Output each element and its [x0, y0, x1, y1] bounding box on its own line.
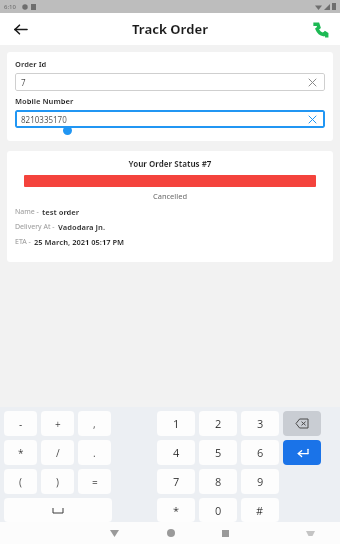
staticText: *	[173, 503, 180, 518]
staticText: Order Id	[15, 59, 47, 69]
staticText: Mobile Number	[15, 96, 74, 106]
staticText: 25 March, 2021 05:17 PM	[34, 237, 125, 247]
button[interactable]: 0	[199, 498, 237, 522]
staticText: ETA -	[15, 237, 31, 247]
button[interactable]: /	[41, 440, 74, 465]
staticText: /	[56, 446, 60, 460]
staticText: (	[19, 475, 22, 489]
staticText: 8210335170	[21, 114, 67, 125]
staticText: Name -	[15, 207, 39, 217]
button[interactable]: Call	[308, 17, 332, 41]
staticText: Delivery At -	[15, 222, 55, 232]
staticText: =	[92, 475, 98, 489]
staticText: 2	[215, 416, 222, 431]
button[interactable]: 6	[241, 440, 279, 465]
staticText: 6:10	[4, 3, 16, 11]
button[interactable]: *	[157, 498, 195, 522]
staticText: 0	[215, 503, 222, 518]
staticText: *	[18, 446, 24, 460]
staticText: #	[256, 503, 264, 518]
button[interactable]: 8	[199, 469, 237, 494]
staticText: Track Order	[132, 20, 208, 38]
staticText: 5	[215, 445, 222, 460]
button[interactable]: 3	[241, 411, 279, 436]
button[interactable]: Home	[161, 523, 181, 543]
button[interactable]	[4, 498, 112, 522]
button[interactable]: (	[4, 469, 37, 494]
button[interactable]: Enter	[283, 440, 321, 465]
staticText: 6	[257, 445, 264, 460]
staticText: -	[19, 417, 23, 431]
button[interactable]: Switch keyboard	[300, 523, 320, 543]
button[interactable]: -	[4, 411, 37, 436]
button[interactable]: Back	[104, 523, 124, 543]
button[interactable]: ,	[78, 411, 111, 436]
staticText: +	[55, 417, 61, 431]
button[interactable]: 2	[199, 411, 237, 436]
button[interactable]: )	[41, 469, 74, 494]
button[interactable]: .	[78, 440, 111, 465]
staticText: Your Order Status #7	[15, 158, 325, 169]
staticText: 8	[215, 474, 222, 489]
button[interactable]: 4	[157, 440, 195, 465]
button[interactable]: 7	[157, 469, 195, 494]
button[interactable]: *	[4, 440, 37, 465]
button[interactable]: 7	[15, 73, 325, 91]
staticText: 9	[257, 474, 264, 489]
staticText: Vadodara Jn.	[58, 222, 105, 232]
button[interactable]: Clear	[305, 75, 319, 89]
staticText: test order	[42, 207, 80, 217]
staticText: ,	[93, 417, 96, 431]
staticText: 1	[173, 416, 180, 431]
staticText: 4	[173, 445, 180, 460]
button[interactable]: +	[41, 411, 74, 436]
staticText: 7	[173, 474, 180, 489]
button[interactable]: Clear	[305, 112, 319, 126]
staticText: )	[56, 475, 59, 489]
staticText: Cancelled	[15, 191, 325, 201]
button[interactable]: 9	[241, 469, 279, 494]
staticText: .	[93, 446, 96, 460]
button[interactable]: 1	[157, 411, 195, 436]
button[interactable]: 5	[199, 440, 237, 465]
staticText: 7	[21, 77, 26, 88]
button[interactable]: Back	[8, 17, 32, 41]
button[interactable]: 8210335170	[15, 110, 325, 128]
button[interactable]: Recent apps	[215, 523, 235, 543]
button[interactable]: #	[241, 498, 279, 522]
button[interactable]: Backspace	[283, 411, 321, 436]
button[interactable]: =	[78, 469, 111, 494]
staticText: 3	[257, 416, 264, 431]
